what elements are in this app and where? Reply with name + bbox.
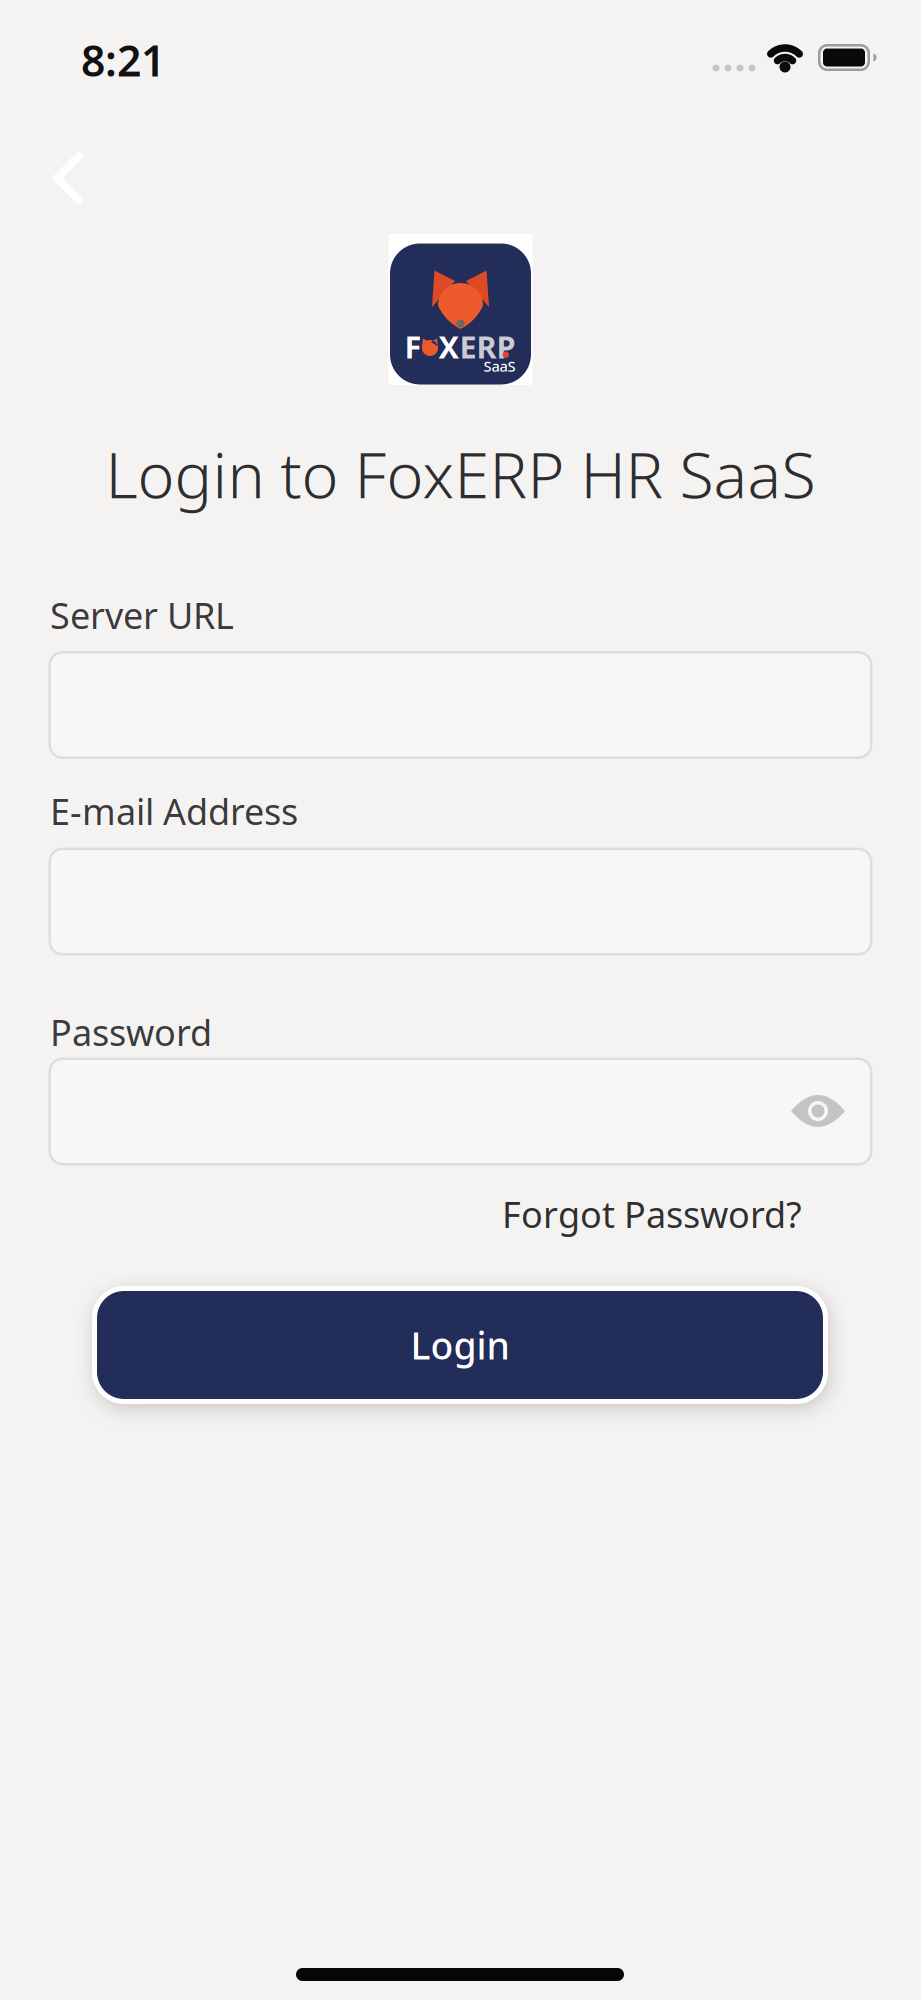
button[interactable]: Forgot Password?: [502, 1190, 802, 1238]
staticText: 8:21: [81, 32, 165, 88]
button[interactable]: Server URL: [48, 651, 872, 759]
staticText: E-mail Address: [50, 787, 298, 835]
staticText: Login to FoxERP HR SaaS: [105, 432, 815, 516]
button[interactable]: Show password: [783, 1076, 853, 1146]
staticText: SaaS: [483, 356, 515, 376]
staticText: F: [404, 326, 421, 367]
button[interactable]: Login: [92, 1286, 828, 1404]
button[interactable]: Back: [33, 137, 113, 217]
button[interactable]: E-mail Address: [48, 847, 872, 955]
staticText: Forgot Password?: [502, 1190, 802, 1238]
staticText: Login: [410, 1320, 509, 1370]
staticText: Password: [50, 1008, 212, 1056]
button[interactable]: Password: [48, 1057, 872, 1165]
staticText: Server URL: [50, 591, 234, 639]
staticText: ERP: [459, 326, 515, 367]
staticText: X: [438, 326, 459, 367]
